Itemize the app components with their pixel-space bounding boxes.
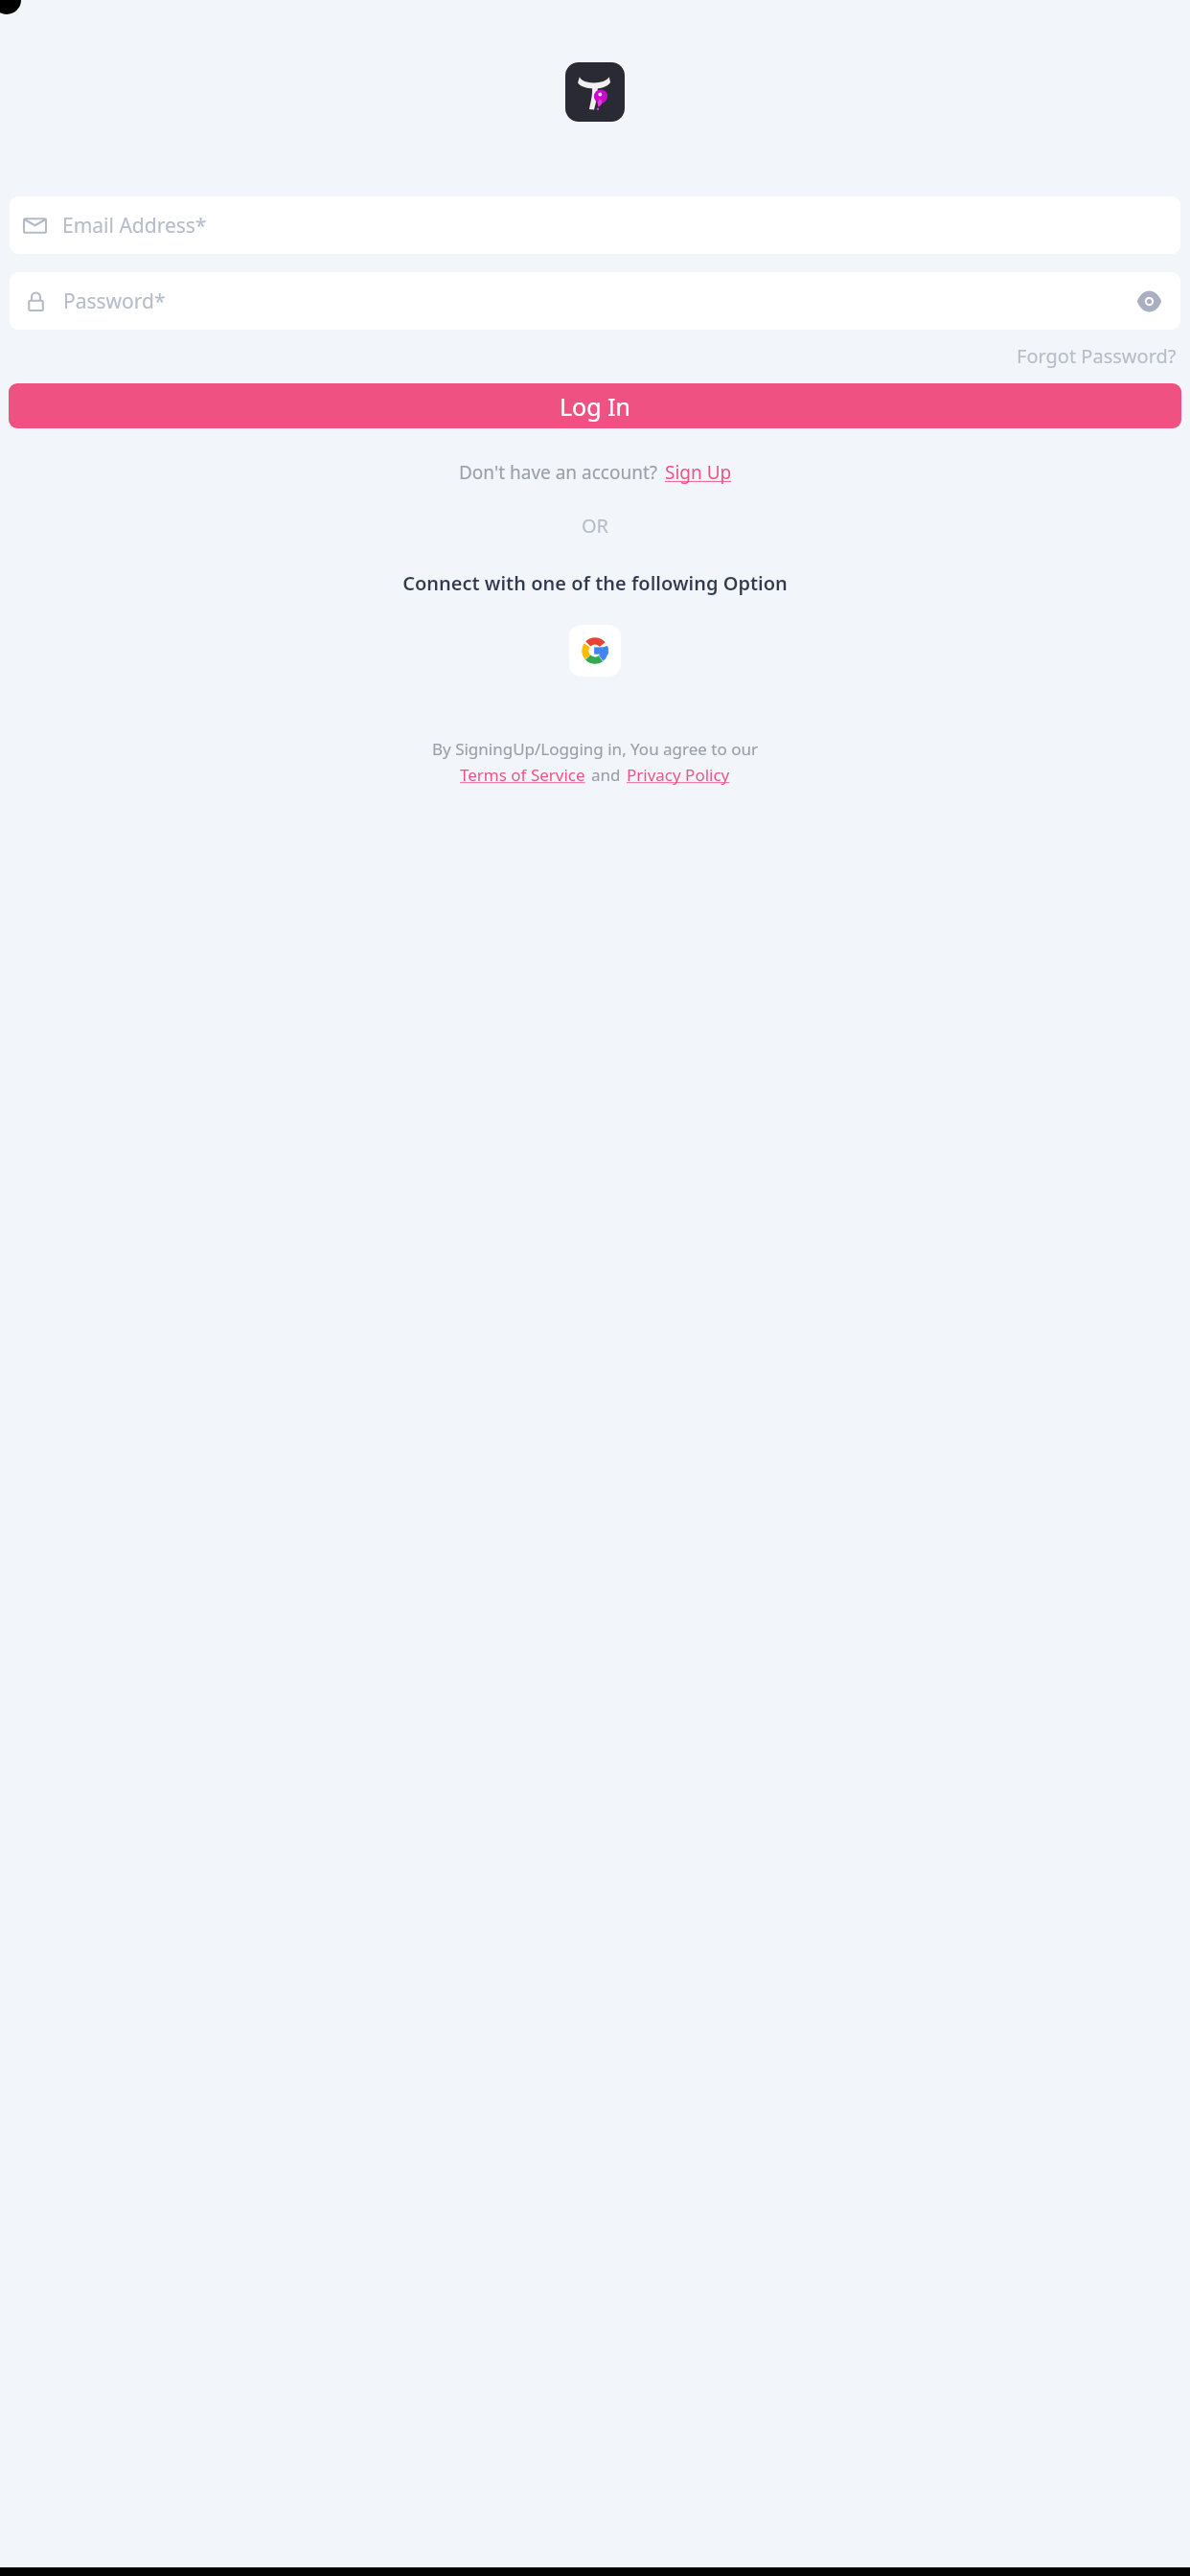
staticText: Terms of Service (460, 764, 585, 786)
staticText: Email Address* (62, 212, 207, 240)
button[interactable]: Sign in with Google (569, 625, 621, 677)
button[interactable]: Terms of Service (460, 764, 585, 786)
staticText: Connect with one of the following Option (0, 570, 1190, 596)
staticText: Forgot Password? (1017, 343, 1177, 369)
staticText: Log In (560, 390, 631, 423)
staticText: By SigningUp/Logging in, You agree to ou… (0, 738, 1190, 760)
button[interactable]: App logo (565, 62, 625, 122)
button[interactable]: Show password (1133, 286, 1164, 316)
button[interactable]: Email Address* (10, 196, 1180, 254)
button[interactable]: Sign Up (665, 460, 732, 485)
button[interactable]: Password* (10, 272, 1180, 330)
staticText: Don't have an account? (459, 460, 658, 485)
staticText: OR (0, 513, 1190, 539)
staticText: Password* (63, 287, 166, 315)
button[interactable]: Log In (9, 383, 1181, 428)
button[interactable]: Privacy Policy (627, 764, 730, 786)
staticText: Privacy Policy (627, 764, 730, 786)
button[interactable]: Forgot Password? (1013, 339, 1180, 373)
staticText: and (591, 764, 621, 786)
staticText: Sign Up (665, 460, 732, 485)
